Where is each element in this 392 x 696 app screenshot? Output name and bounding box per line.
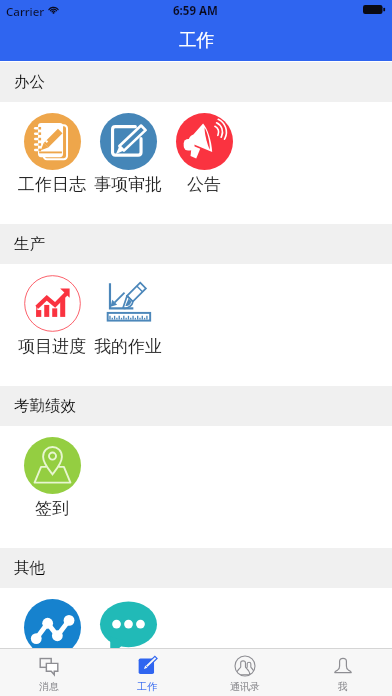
button[interactable]: 通讯录: [196, 649, 294, 696]
staticText: 生产: [14, 234, 45, 254]
staticText: 6:59 AM: [173, 3, 218, 19]
staticText: Carrier: [6, 4, 45, 20]
button[interactable]: 消息: [90, 588, 166, 648]
staticText: 我的作业: [94, 336, 162, 357]
button[interactable]: 我: [294, 649, 392, 696]
staticText: 项目进度: [18, 336, 86, 357]
staticText: 考勤绩效: [14, 396, 76, 416]
staticText: 通讯录: [230, 680, 260, 693]
staticText: 工作: [179, 29, 214, 51]
button[interactable]: 签到: [14, 426, 90, 519]
staticText: 工作: [137, 680, 157, 693]
button[interactable]: 消息: [0, 649, 98, 696]
staticText: 其他: [14, 558, 45, 578]
staticText: 我: [338, 680, 348, 693]
staticText: 办公: [14, 72, 45, 92]
staticText: 公告: [187, 174, 221, 195]
button[interactable]: 工作日志: [14, 102, 90, 195]
button[interactable]: 公告: [166, 102, 242, 195]
staticText: 事项审批: [94, 174, 162, 195]
staticText: 工作日志: [18, 174, 86, 195]
button[interactable]: 我的作业: [90, 264, 166, 357]
staticText: 消息: [39, 680, 59, 693]
button[interactable]: 统计: [14, 588, 90, 648]
button[interactable]: 事项审批: [90, 102, 166, 195]
staticText: 签到: [35, 498, 69, 519]
button[interactable]: 项目进度: [14, 264, 90, 357]
button[interactable]: 工作: [98, 649, 196, 696]
